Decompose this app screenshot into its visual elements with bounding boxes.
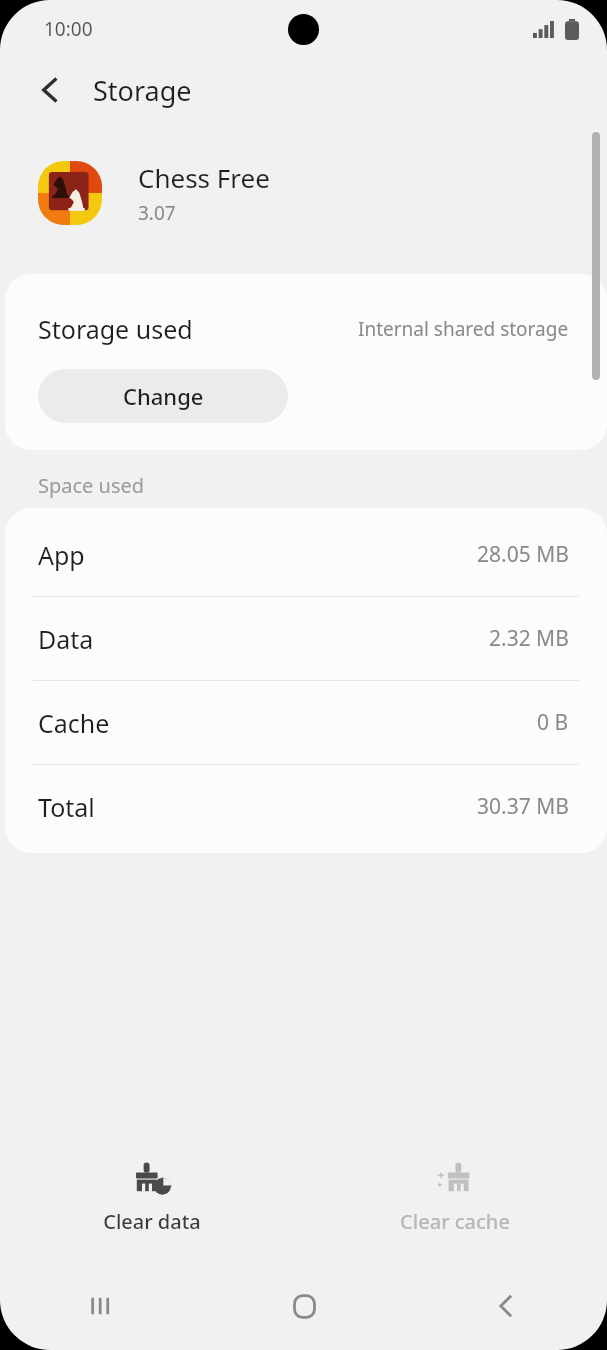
button[interactable]: Cache bbox=[5, 681, 607, 765]
staticText: Storage bbox=[93, 72, 192, 109]
staticText: Space used bbox=[38, 472, 145, 499]
staticText: 10:00 bbox=[44, 16, 93, 42]
staticText: Clear data bbox=[103, 1208, 201, 1235]
button[interactable]: Back bbox=[26, 66, 74, 114]
staticText: 30.37 MB bbox=[477, 792, 569, 821]
button[interactable]: Back bbox=[405, 1278, 607, 1334]
button[interactable]: App bbox=[5, 513, 607, 597]
staticText: 3.07 bbox=[138, 200, 176, 226]
other: Clear data bbox=[132, 1160, 172, 1200]
staticText: Total bbox=[38, 790, 95, 824]
staticText: 28.05 MB bbox=[477, 540, 569, 569]
button[interactable]: Clear cache bbox=[303, 1152, 607, 1235]
button[interactable]: Data bbox=[5, 597, 607, 681]
staticText: 0 B bbox=[537, 708, 569, 737]
button[interactable]: Recent apps bbox=[0, 1278, 203, 1334]
button[interactable]: Home bbox=[203, 1278, 405, 1334]
staticText: Data bbox=[38, 622, 94, 656]
staticText: Clear cache bbox=[400, 1208, 510, 1235]
staticText: Chess Free bbox=[138, 160, 270, 195]
staticText: 2.32 MB bbox=[489, 624, 569, 653]
staticText: Internal shared storage bbox=[358, 316, 569, 342]
other: Clear cache bbox=[435, 1160, 475, 1200]
staticText: Cache bbox=[38, 706, 110, 740]
staticText: App bbox=[38, 538, 85, 572]
button[interactable]: Change bbox=[38, 369, 288, 423]
staticText: Change bbox=[123, 381, 204, 411]
staticText: Storage used bbox=[38, 312, 193, 346]
button[interactable]: Clear data bbox=[0, 1152, 303, 1235]
button[interactable]: Total bbox=[5, 765, 607, 848]
